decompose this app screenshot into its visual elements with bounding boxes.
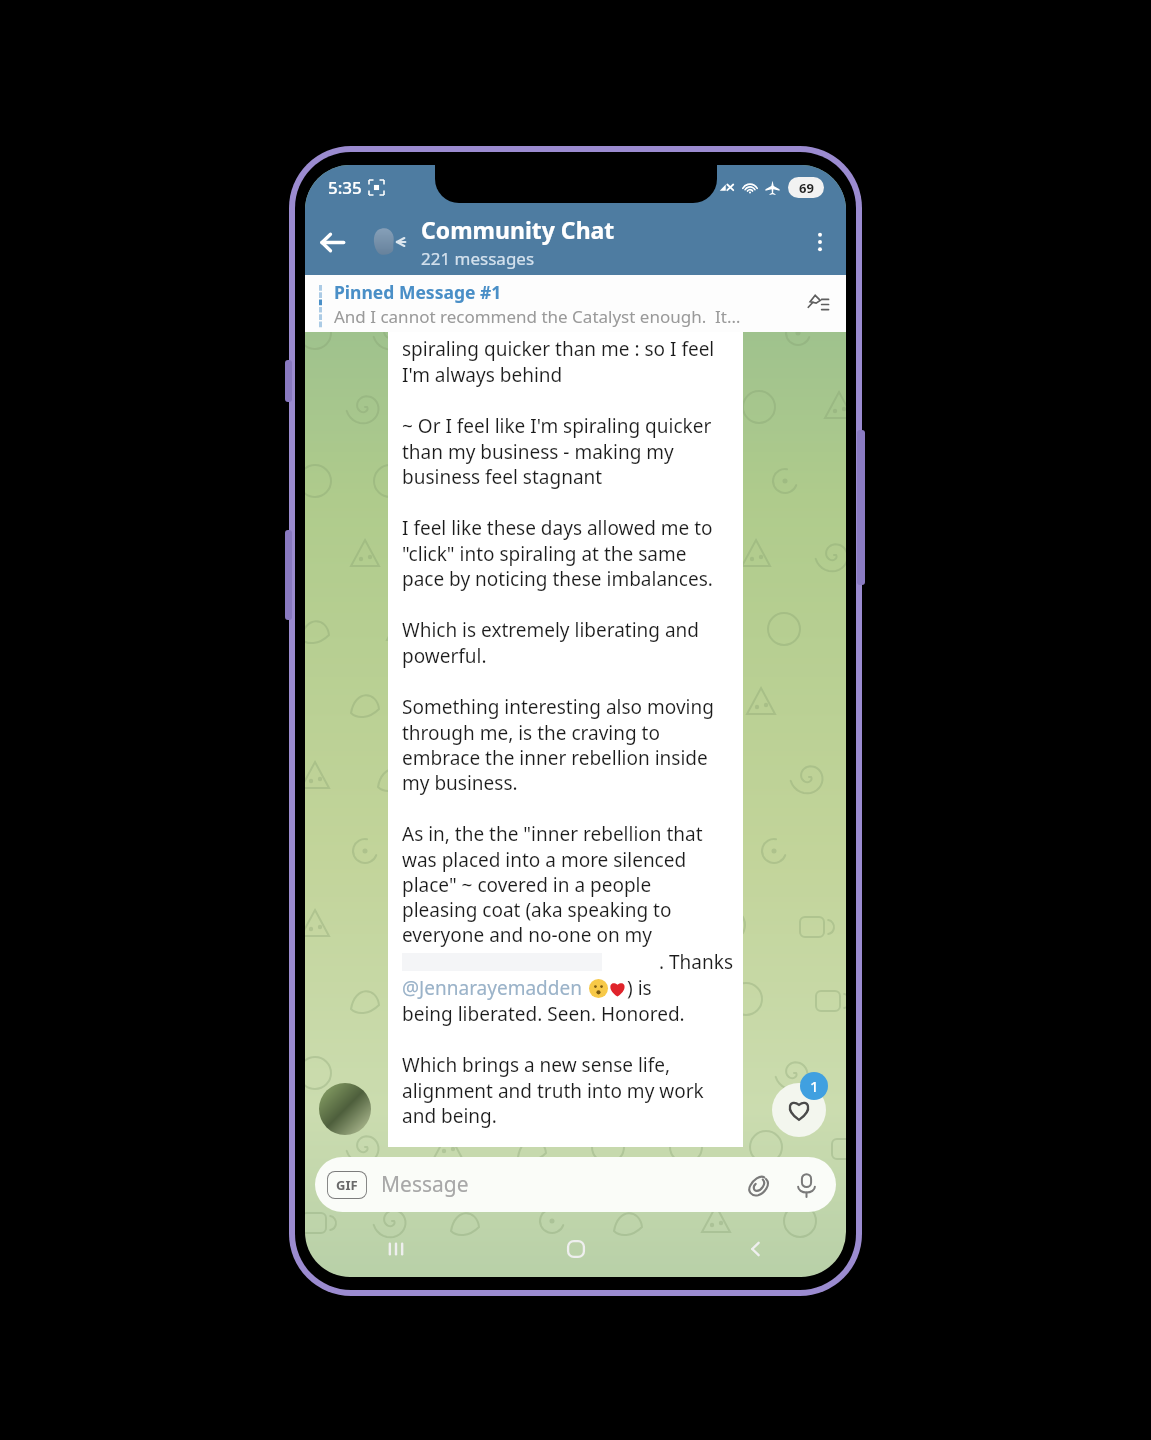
button[interactable]: spiraling quicker than me : so I feel I'…: [388, 332, 743, 1147]
staticText: 1: [810, 1076, 819, 1096]
staticText: ~ Or I feel like I'm spiraling quicker t…: [402, 413, 712, 490]
button[interactable]: Back: [666, 1221, 846, 1277]
staticText: And I cannot recommend the Catalyst enou…: [334, 305, 741, 328]
button[interactable]: Attach: [736, 1162, 782, 1208]
button[interactable]: Community Chat: [421, 214, 794, 270]
button[interactable]: Home: [486, 1221, 666, 1277]
button[interactable]: Recents: [305, 1221, 486, 1277]
button[interactable]: Pinned messages list: [794, 281, 840, 327]
button[interactable]: Back: [305, 215, 359, 269]
button[interactable]: Like: [772, 1083, 826, 1137]
staticText: As in, the the "inner rebellion that was…: [402, 821, 703, 948]
staticText: I feel like these days allowed me to "cl…: [402, 515, 713, 592]
staticText: Community Chat: [421, 214, 615, 245]
button[interactable]: Pinned Message #1: [305, 275, 846, 332]
staticText: @Jennarayemadden: [402, 975, 582, 1001]
staticText: . Thanks: [659, 949, 733, 975]
button[interactable]: GIF: [327, 1171, 367, 1199]
staticText: Something interesting also moving throug…: [402, 694, 714, 796]
staticText: GIF: [336, 1176, 358, 1194]
button[interactable]: GIF: [315, 1157, 836, 1212]
button[interactable]: Voice message: [782, 1161, 830, 1209]
staticText: spiraling quicker than me : so I feel I'…: [402, 336, 715, 388]
staticText: Message: [381, 1170, 736, 1199]
staticText: 221 messages: [421, 247, 535, 270]
staticText: Which brings a new sense life, alignment…: [402, 1052, 704, 1129]
staticText: 69: [799, 179, 814, 197]
staticText: 5:35: [328, 176, 362, 199]
staticText: Pinned Message #1: [334, 280, 502, 304]
button[interactable]: More options: [794, 216, 846, 268]
staticText: Which is extremely liberating and powerf…: [402, 617, 700, 669]
staticText: being liberated. Seen. Honored.: [402, 1001, 685, 1027]
staticText: ) is: [627, 975, 652, 1001]
